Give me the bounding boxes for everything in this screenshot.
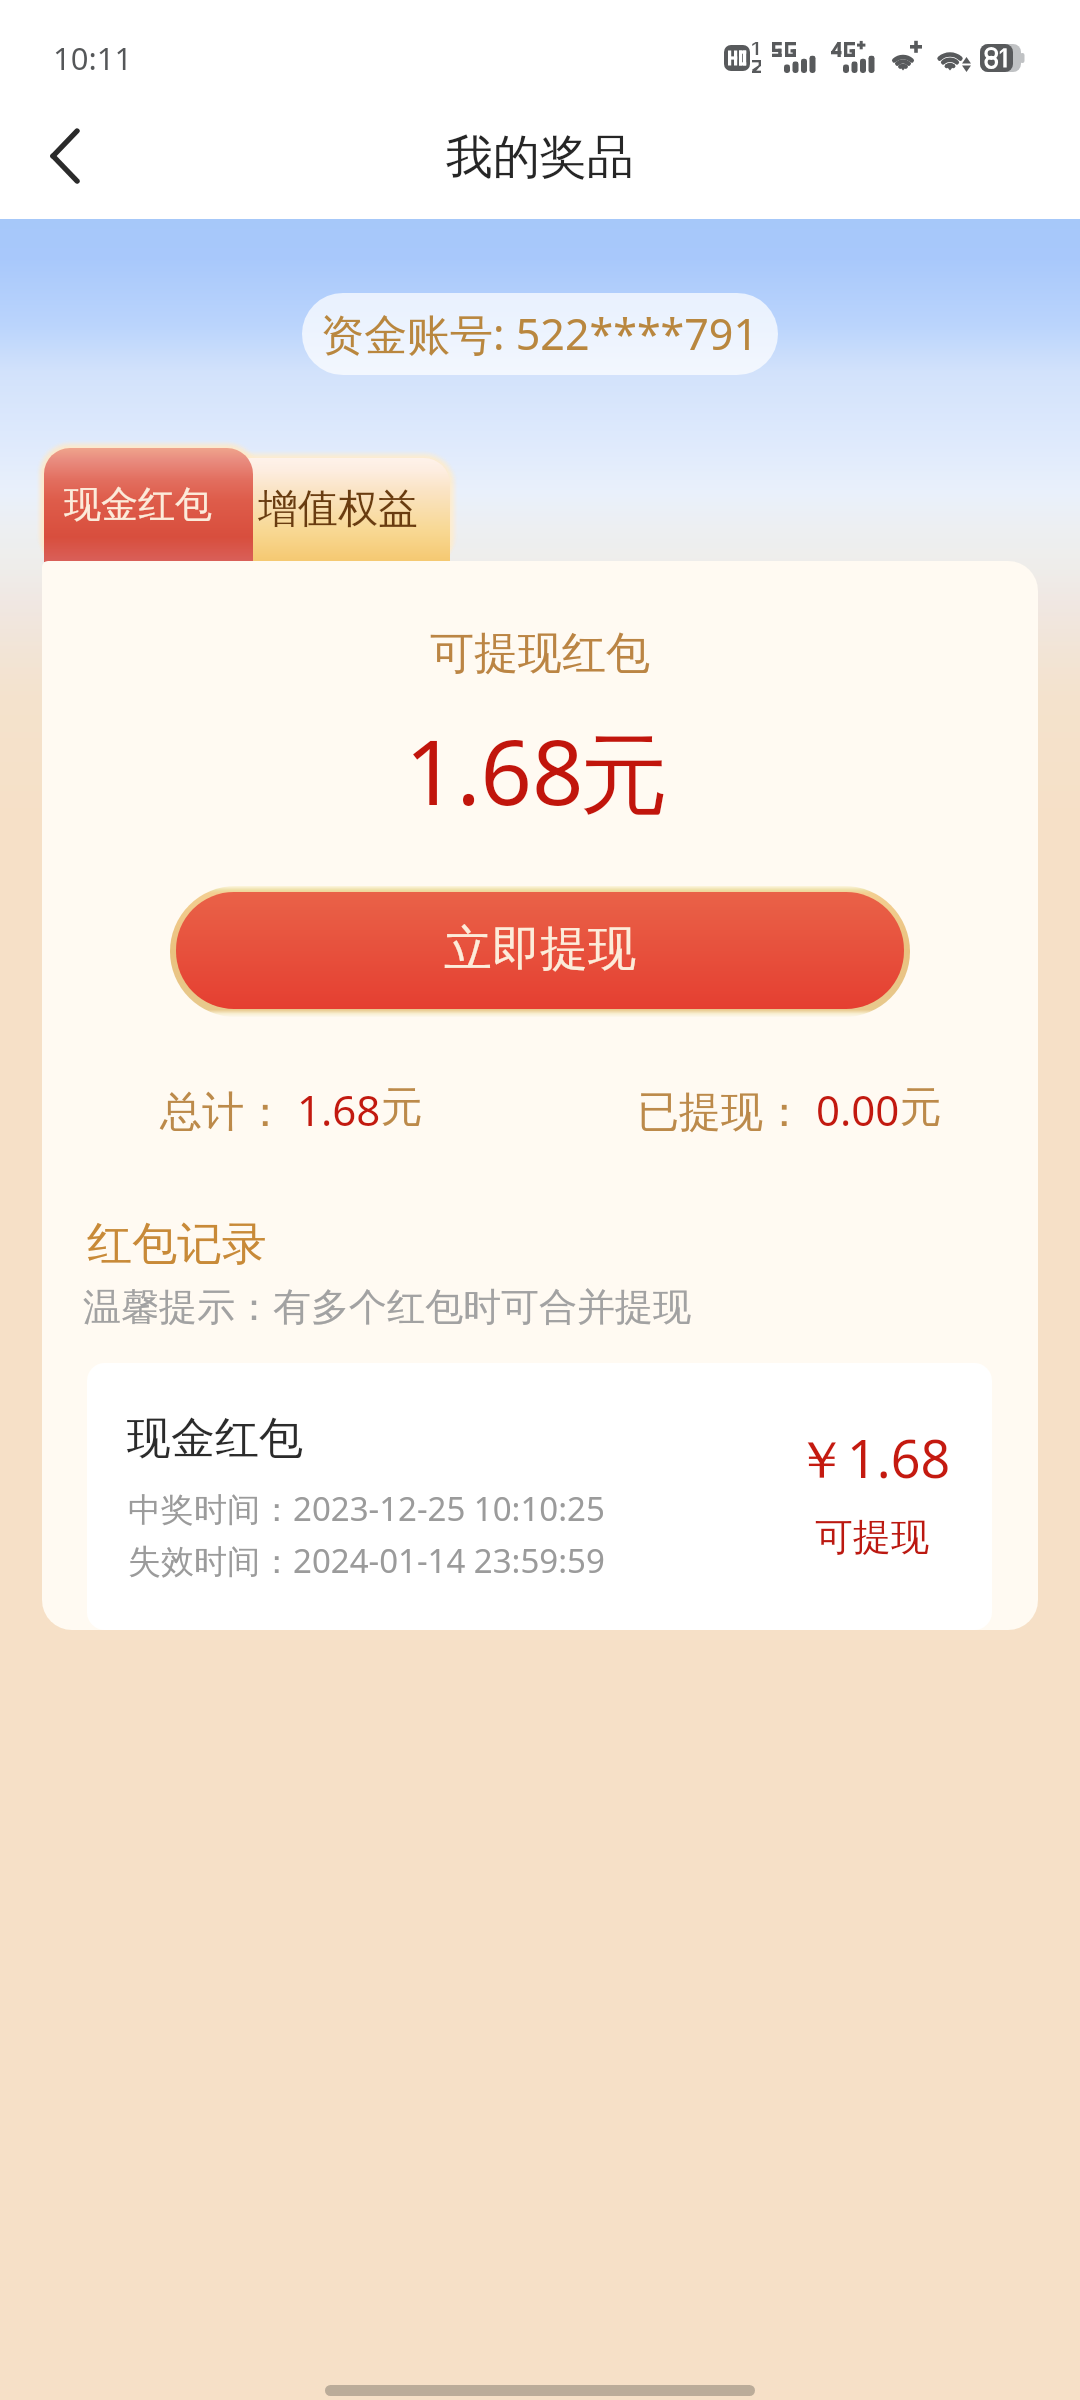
staticText: 总计： xyxy=(160,1081,297,1138)
staticText: 红包记录 xyxy=(87,1216,267,1273)
staticText: 可提现红包 xyxy=(430,626,650,681)
staticText: 可提现 xyxy=(815,1513,929,1561)
button[interactable]: 现金红包 xyxy=(87,1363,992,1630)
staticText: 资金账号: 522****791 xyxy=(321,304,759,363)
button[interactable]: 现金红包 xyxy=(44,448,253,562)
staticText: 增值权益 xyxy=(258,483,418,533)
staticText: 元 xyxy=(381,1081,423,1134)
staticText: 温馨提示：有多个红包时可合并提现 xyxy=(83,1283,691,1331)
staticText: 现金红包 xyxy=(64,481,212,528)
staticText: 失效时间：2024-01-14 23:59:59 xyxy=(128,1538,605,1583)
staticText: 我的奖品 xyxy=(446,128,634,187)
staticText: 中奖时间：2023-12-25 10:10:25 xyxy=(128,1486,605,1531)
button[interactable]: 资金账号: 522****791 xyxy=(302,293,778,375)
staticText: 1.68 xyxy=(405,709,584,832)
button[interactable]: Back xyxy=(4,100,116,212)
staticText: 10:11 xyxy=(53,37,133,79)
staticText: 1.68 xyxy=(297,1081,381,1138)
staticText: 已提现： xyxy=(637,1081,816,1138)
button[interactable]: 增值权益 xyxy=(225,458,450,562)
staticText: ￥1.68 xyxy=(795,1422,951,1493)
staticText: 元 xyxy=(580,720,668,831)
staticText: 0.00 xyxy=(816,1081,900,1138)
staticText: 现金红包 xyxy=(127,1411,303,1466)
staticText: 立即提现 xyxy=(444,919,636,979)
staticText: 元 xyxy=(900,1081,942,1134)
button[interactable]: 立即提现 xyxy=(176,892,904,1009)
